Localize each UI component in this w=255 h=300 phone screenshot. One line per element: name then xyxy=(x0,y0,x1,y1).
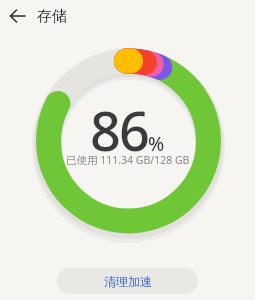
staticText: 86 xyxy=(90,93,148,167)
staticText: 清理加速 xyxy=(104,274,152,289)
staticText: 已使用 111.34 GB/128 GB xyxy=(66,153,190,167)
staticText: 存储 xyxy=(37,7,67,26)
button[interactable]: 清理加速 xyxy=(57,268,198,294)
staticText: % xyxy=(148,131,165,157)
button[interactable] xyxy=(2,0,34,32)
